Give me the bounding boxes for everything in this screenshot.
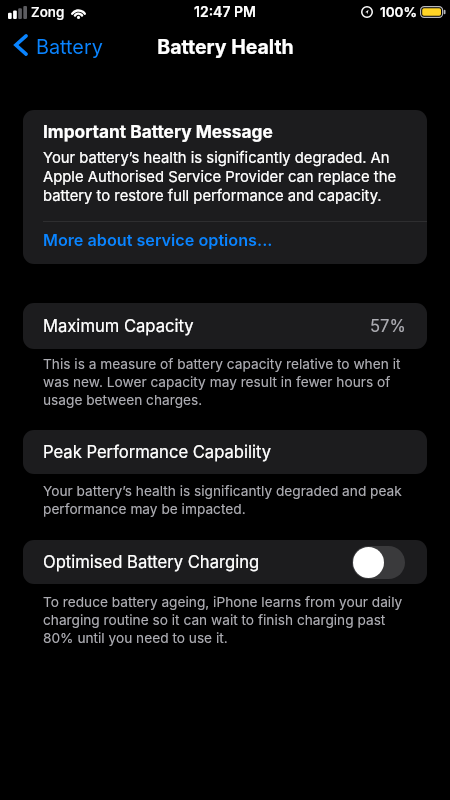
staticText: Your battery’s health is significantly d…	[43, 482, 410, 518]
button[interactable]: Optimised Battery Charging toggle	[352, 546, 405, 579]
staticText: Optimised Battery Charging	[43, 552, 260, 572]
staticText: This is a measure of battery capacity re…	[43, 355, 410, 409]
staticText: 100%	[380, 4, 418, 20]
staticText: To reduce battery ageing, iPhone learns …	[43, 593, 410, 647]
button[interactable]: Peak Performance Capability	[23, 430, 427, 474]
staticText: Peak Performance Capability	[43, 442, 272, 462]
staticText: Battery Health	[157, 35, 294, 59]
staticText: Your battery’s health is significantly d…	[43, 148, 411, 205]
staticText: 57%	[370, 316, 406, 336]
button[interactable]: Battery	[0, 28, 115, 66]
staticText: 12:47 PM	[194, 3, 256, 20]
button[interactable]: More about service options...	[23, 222, 427, 264]
staticText: Zong	[31, 4, 65, 20]
button[interactable]: Maximum Capacity	[23, 303, 427, 349]
staticText: Maximum Capacity	[43, 316, 194, 336]
staticText: Important Battery Message	[43, 121, 273, 142]
staticText: Battery	[36, 35, 103, 59]
staticText: More about service options...	[43, 230, 273, 250]
